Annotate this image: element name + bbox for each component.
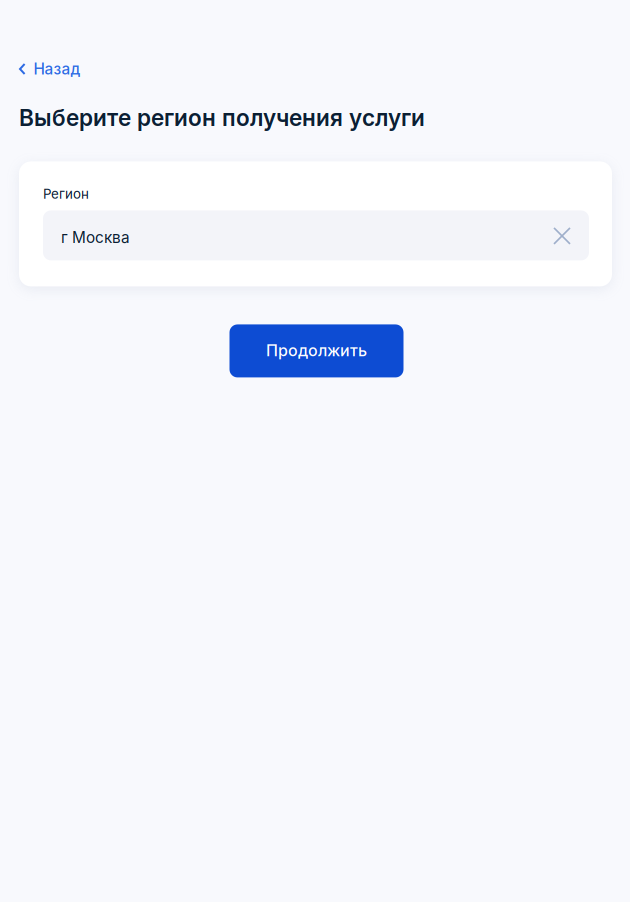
staticText: г Москва (61, 228, 130, 247)
button[interactable]: Продолжить (229, 324, 403, 377)
button[interactable]: Очистить (544, 210, 580, 260)
staticText: Назад (34, 60, 81, 78)
staticText: Регион (43, 186, 89, 202)
button[interactable]: Назад (0, 57, 95, 81)
button[interactable]: г Москва (43, 210, 589, 260)
staticText: Выберите регион получения услуги (19, 104, 425, 131)
staticText: Продолжить (266, 341, 367, 360)
